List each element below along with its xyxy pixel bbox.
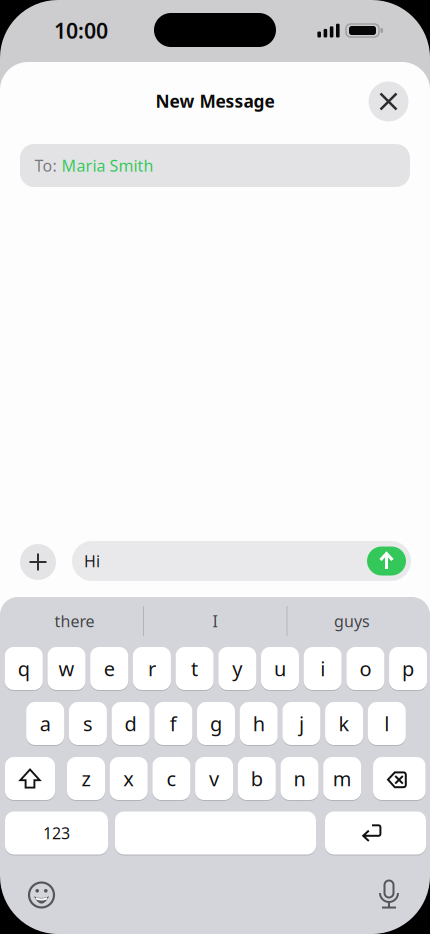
staticText: 123 [43, 822, 70, 844]
staticText: e [104, 655, 115, 682]
staticText: d [125, 710, 137, 737]
staticText: r [148, 655, 156, 682]
staticText: z [81, 765, 90, 792]
staticText: x [123, 765, 134, 792]
staticText: New Message [155, 89, 274, 112]
staticText: o [359, 655, 371, 682]
staticText: l [384, 710, 389, 737]
staticText: 10:00 [54, 16, 108, 45]
staticText: h [253, 710, 265, 737]
staticText: i [320, 655, 325, 682]
staticText: g [210, 710, 222, 737]
staticText: k [339, 710, 350, 737]
staticText: I [212, 610, 217, 632]
staticText: a [40, 710, 51, 737]
staticText: n [293, 765, 305, 792]
staticText: v [209, 765, 219, 792]
staticText: y [232, 655, 242, 682]
staticText: c [166, 765, 176, 792]
staticText: s [83, 710, 93, 737]
staticText: w [58, 655, 74, 682]
staticText: To: [34, 155, 56, 176]
staticText: there [54, 610, 94, 632]
staticText: m [333, 765, 352, 792]
staticText: u [274, 655, 286, 682]
staticText: q [18, 655, 30, 682]
staticText: t [191, 655, 198, 682]
staticText: j [299, 710, 304, 737]
staticText: b [251, 765, 263, 792]
staticText: Maria Smith [61, 155, 153, 176]
staticText: f [170, 710, 177, 737]
staticText: guys [334, 610, 370, 632]
staticText: p [402, 655, 414, 682]
staticText: Hi [84, 550, 100, 572]
